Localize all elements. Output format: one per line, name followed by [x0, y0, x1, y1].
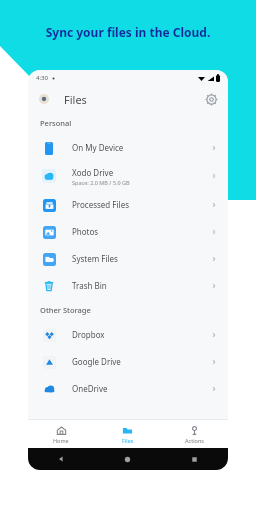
button[interactable]: On My Device	[28, 134, 228, 161]
button[interactable]: Trash Bin	[28, 272, 228, 299]
button[interactable]: Recents	[161, 448, 228, 470]
staticText: Dropbox	[72, 329, 105, 340]
staticText: Files	[122, 437, 134, 444]
staticText: 4:30	[36, 74, 48, 82]
button[interactable]: System Files	[28, 245, 228, 272]
staticText: Photos	[72, 226, 99, 237]
button[interactable]: Back	[28, 448, 94, 470]
staticText: Sync your files in the Cloud.	[0, 24, 256, 40]
staticText: Files	[64, 92, 87, 107]
staticText: System Files	[72, 253, 118, 264]
staticText: Google Drive	[72, 356, 121, 367]
staticText: Processed Files	[72, 199, 129, 210]
button[interactable]: Google Drive	[28, 348, 228, 375]
button[interactable]: OneDrive	[28, 375, 228, 402]
staticText: Home	[53, 437, 69, 444]
staticText: Space: 2.0 MB / 5.0 GB	[72, 179, 130, 186]
button[interactable]: Processed Files	[28, 191, 228, 218]
staticText: Other Storage	[40, 305, 91, 315]
staticText: OneDrive	[72, 383, 108, 394]
button[interactable]: Files	[94, 420, 161, 448]
button[interactable]: Settings	[204, 92, 218, 106]
button[interactable]: Home	[94, 448, 161, 470]
button[interactable]: Dropbox	[28, 321, 228, 348]
button[interactable]: Menu	[38, 93, 50, 105]
button[interactable]: Photos	[28, 218, 228, 245]
button[interactable]: Actions	[161, 420, 228, 448]
staticText: Trash Bin	[72, 280, 107, 291]
staticText: On My Device	[72, 142, 124, 153]
button[interactable]: Xodo Drive	[28, 161, 228, 191]
staticText: Actions	[185, 437, 204, 444]
button[interactable]: Home	[28, 420, 94, 448]
staticText: Xodo Drive	[72, 167, 114, 178]
staticText: Personal	[40, 118, 72, 128]
